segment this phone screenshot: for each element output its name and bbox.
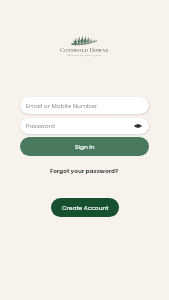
button[interactable]: Sign in [20, 137, 149, 156]
staticText: Sign in [75, 143, 95, 151]
staticText: Where time has grown its graces [67, 53, 102, 57]
staticText: Email or Mobile Number [26, 102, 98, 110]
staticText: Forgot your password? [50, 167, 119, 175]
button[interactable]: Create Account [51, 198, 119, 217]
button[interactable]: Email or Mobile Number [20, 97, 149, 114]
staticText: Create Account [62, 204, 109, 212]
staticText: Password [26, 122, 55, 130]
button[interactable]: Forgot your password? [46, 166, 123, 176]
button[interactable]: Show password [133, 121, 143, 131]
staticText: Cotswold Downs [60, 46, 109, 53]
button[interactable]: Password [20, 118, 149, 134]
